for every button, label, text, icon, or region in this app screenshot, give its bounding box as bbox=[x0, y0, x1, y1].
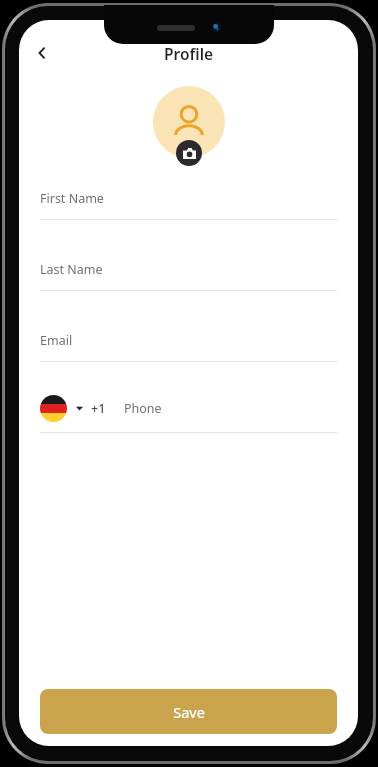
button[interactable]: First Name bbox=[40, 190, 337, 220]
staticText: Save bbox=[173, 702, 205, 722]
other: Country: Germany bbox=[40, 395, 67, 422]
button[interactable]: Country: Germany bbox=[40, 395, 337, 433]
button[interactable]: Last Name bbox=[40, 261, 337, 291]
staticText: Profile bbox=[164, 43, 214, 64]
staticText: First Name bbox=[40, 190, 104, 207]
button[interactable]: Save bbox=[40, 689, 337, 734]
staticText: Last Name bbox=[40, 261, 103, 278]
staticText: +1 bbox=[91, 400, 106, 417]
button[interactable]: Change photo bbox=[176, 140, 202, 166]
button[interactable]: Email bbox=[40, 332, 337, 362]
staticText: Email bbox=[40, 332, 73, 349]
button[interactable]: Back bbox=[25, 38, 59, 68]
staticText: Phone bbox=[124, 400, 162, 417]
button[interactable]: Profile picture bbox=[153, 86, 225, 158]
